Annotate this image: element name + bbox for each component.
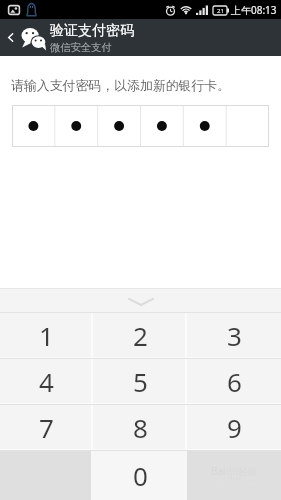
- button[interactable]: Back: [0, 19, 20, 56]
- button[interactable]: 2: [93, 313, 187, 357]
- button[interactable]: 6: [187, 359, 281, 403]
- button[interactable]: 3: [187, 313, 281, 357]
- button[interactable]: 9: [187, 405, 281, 449]
- staticText: 1: [39, 318, 54, 353]
- staticText: 8: [133, 410, 148, 445]
- staticText: 2: [133, 318, 148, 353]
- button[interactable]: 0: [93, 451, 187, 500]
- button[interactable]: 8: [93, 405, 187, 449]
- staticText: 微信安全支付: [50, 41, 112, 54]
- staticText: 6: [227, 364, 242, 399]
- staticText: 3: [227, 318, 242, 353]
- button[interactable]: [0, 451, 93, 500]
- staticText: 7: [39, 410, 54, 445]
- button[interactable]: 1: [0, 313, 93, 357]
- staticText: 9: [227, 410, 242, 445]
- button[interactable]: 7: [0, 405, 93, 449]
- staticText: 0: [133, 458, 148, 493]
- staticText: 5: [133, 364, 148, 399]
- staticText: 4: [39, 364, 54, 399]
- button[interactable]: 5: [93, 359, 187, 403]
- staticText: 验证支付密码: [50, 22, 134, 40]
- button[interactable]: 4: [0, 359, 93, 403]
- staticText: 上午08:13: [231, 3, 277, 17]
- staticText: 21: [217, 7, 224, 15]
- staticText: 请输入支付密码，以添加新的银行卡。: [11, 78, 231, 94]
